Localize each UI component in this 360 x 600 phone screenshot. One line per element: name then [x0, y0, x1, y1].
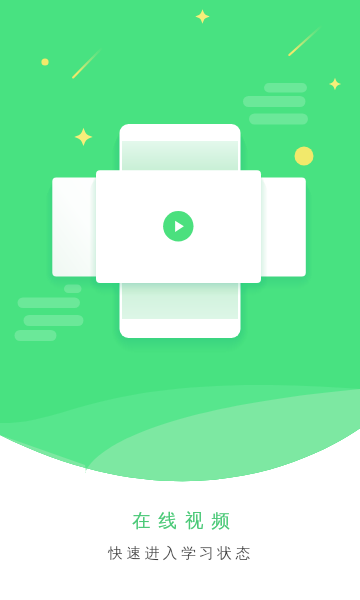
staticText: 在线视频: [128, 509, 234, 532]
staticText: 快速进入学习状态: [108, 544, 254, 562]
